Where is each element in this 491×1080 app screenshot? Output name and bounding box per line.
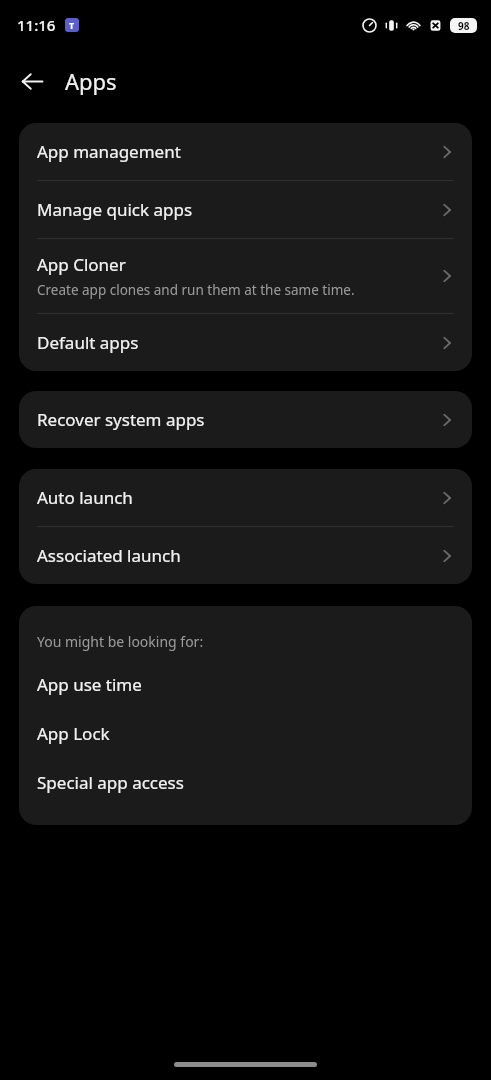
button[interactable]: App Lock	[19, 709, 472, 758]
staticText: Default apps	[37, 331, 139, 354]
staticText: Recover system apps	[37, 408, 205, 431]
button[interactable]: Default apps	[19, 314, 472, 371]
staticText: Associated launch	[37, 544, 181, 567]
staticText: Auto launch	[37, 486, 133, 509]
staticText: Create app clones and run them at the sa…	[37, 281, 355, 299]
staticText: Apps	[65, 66, 117, 96]
button[interactable]: Back	[8, 57, 56, 105]
staticText: 98	[458, 19, 470, 33]
staticText: 11:16	[17, 15, 56, 35]
button[interactable]: App use time	[19, 660, 472, 709]
staticText: App management	[37, 140, 181, 163]
staticText: App use time	[37, 673, 142, 696]
staticText: You might be looking for:	[37, 632, 204, 651]
button[interactable]: Auto launch	[19, 469, 472, 526]
button[interactable]: Manage quick apps	[19, 181, 472, 238]
staticText: Manage quick apps	[37, 198, 193, 221]
staticText: App Lock	[37, 722, 110, 745]
staticText: T	[69, 19, 75, 31]
button[interactable]: Associated launch	[19, 527, 472, 584]
button[interactable]: App management	[19, 123, 472, 180]
staticText: App Cloner	[37, 253, 126, 276]
staticText: Special app access	[37, 771, 184, 794]
button[interactable]: Special app access	[19, 758, 472, 807]
button[interactable]: App Cloner	[19, 239, 472, 313]
button[interactable]: Recover system apps	[19, 391, 472, 448]
